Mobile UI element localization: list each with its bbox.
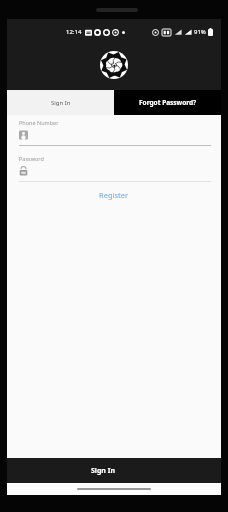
staticText: Phone Number [19,119,59,126]
staticText: 12:14 [66,28,82,36]
other: Home gesture bar [77,488,151,490]
other: Contact [19,130,28,140]
other: Password [19,166,28,176]
other: App logo [100,51,128,79]
staticText: Password [19,155,44,162]
staticText: 91% [194,28,206,36]
button[interactable]: Sign In [7,90,114,115]
button[interactable]: Sign In [7,458,221,483]
staticText: Register [99,190,129,200]
button[interactable]: Password [19,155,211,182]
staticText: Sign In [91,466,116,476]
staticText: Forgot Password? [139,98,197,107]
button[interactable]: Register [7,188,221,202]
button[interactable]: Phone Number [19,119,211,146]
staticText: Sign In [51,99,71,107]
button[interactable]: Forgot Password? [114,90,221,115]
